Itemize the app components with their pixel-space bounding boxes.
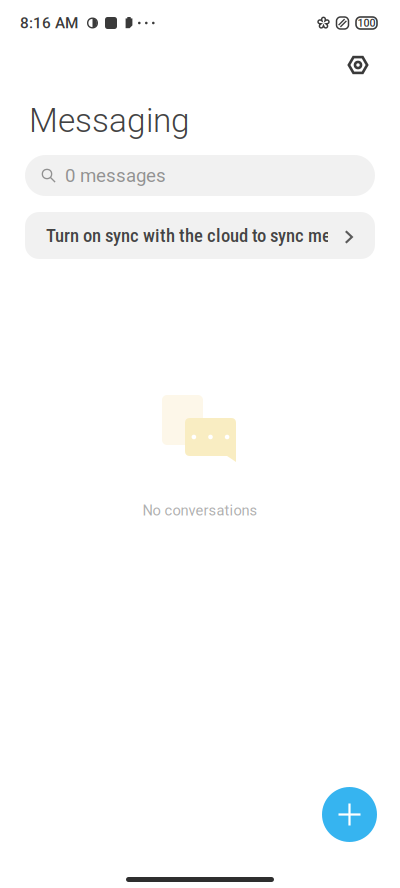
button[interactable]: Turn on sync with the cloud to sync mess…: [25, 212, 375, 259]
staticText: No conversations: [142, 502, 257, 519]
staticText: Turn on sync with the cloud to sync mess…: [46, 225, 382, 246]
staticText: 100: [357, 17, 375, 29]
button[interactable]: Settings: [336, 43, 380, 87]
staticText: 0 messages: [65, 165, 166, 186]
button[interactable]: New message: [322, 787, 377, 842]
staticText: 8:16 AM: [20, 14, 78, 32]
button[interactable]: 0 messages: [25, 155, 375, 196]
staticText: Messaging: [29, 101, 190, 140]
